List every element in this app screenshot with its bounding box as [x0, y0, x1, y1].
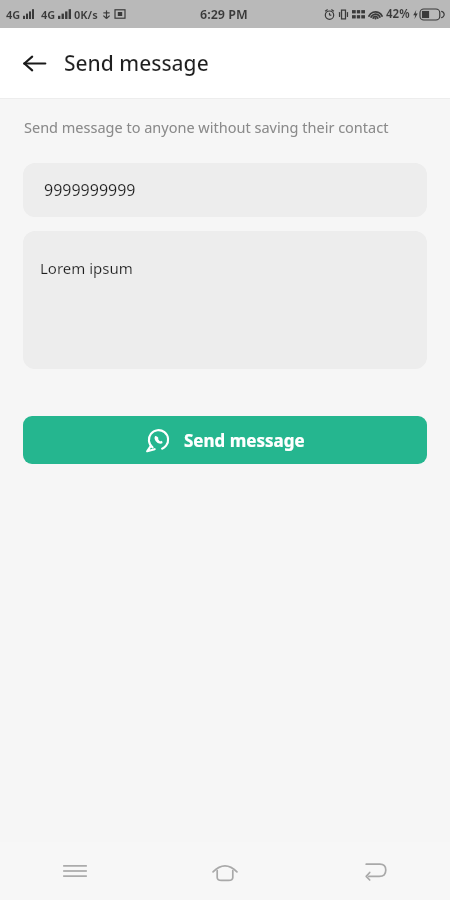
staticText: Send message to anyone without saving th… — [24, 117, 389, 137]
staticText: 0K/s — [74, 7, 98, 22]
staticText: 4G — [6, 7, 21, 22]
button[interactable]: Lorem ipsum — [23, 231, 427, 369]
staticText: 4G — [41, 7, 56, 22]
button[interactable]: Back — [300, 842, 450, 900]
staticText: Lorem ipsum — [40, 258, 133, 278]
staticText: Send message — [64, 49, 209, 78]
button[interactable]: Back — [12, 41, 56, 85]
staticText: 9999999999 — [44, 179, 136, 201]
staticText: 6:29 PM — [200, 6, 248, 23]
button[interactable]: Home — [150, 842, 300, 900]
staticText: 42% — [386, 6, 410, 22]
staticText: Send message — [184, 429, 305, 452]
button[interactable]: Recents — [0, 842, 150, 900]
button[interactable]: Send message — [23, 416, 427, 464]
button[interactable]: 9999999999 — [23, 163, 427, 217]
